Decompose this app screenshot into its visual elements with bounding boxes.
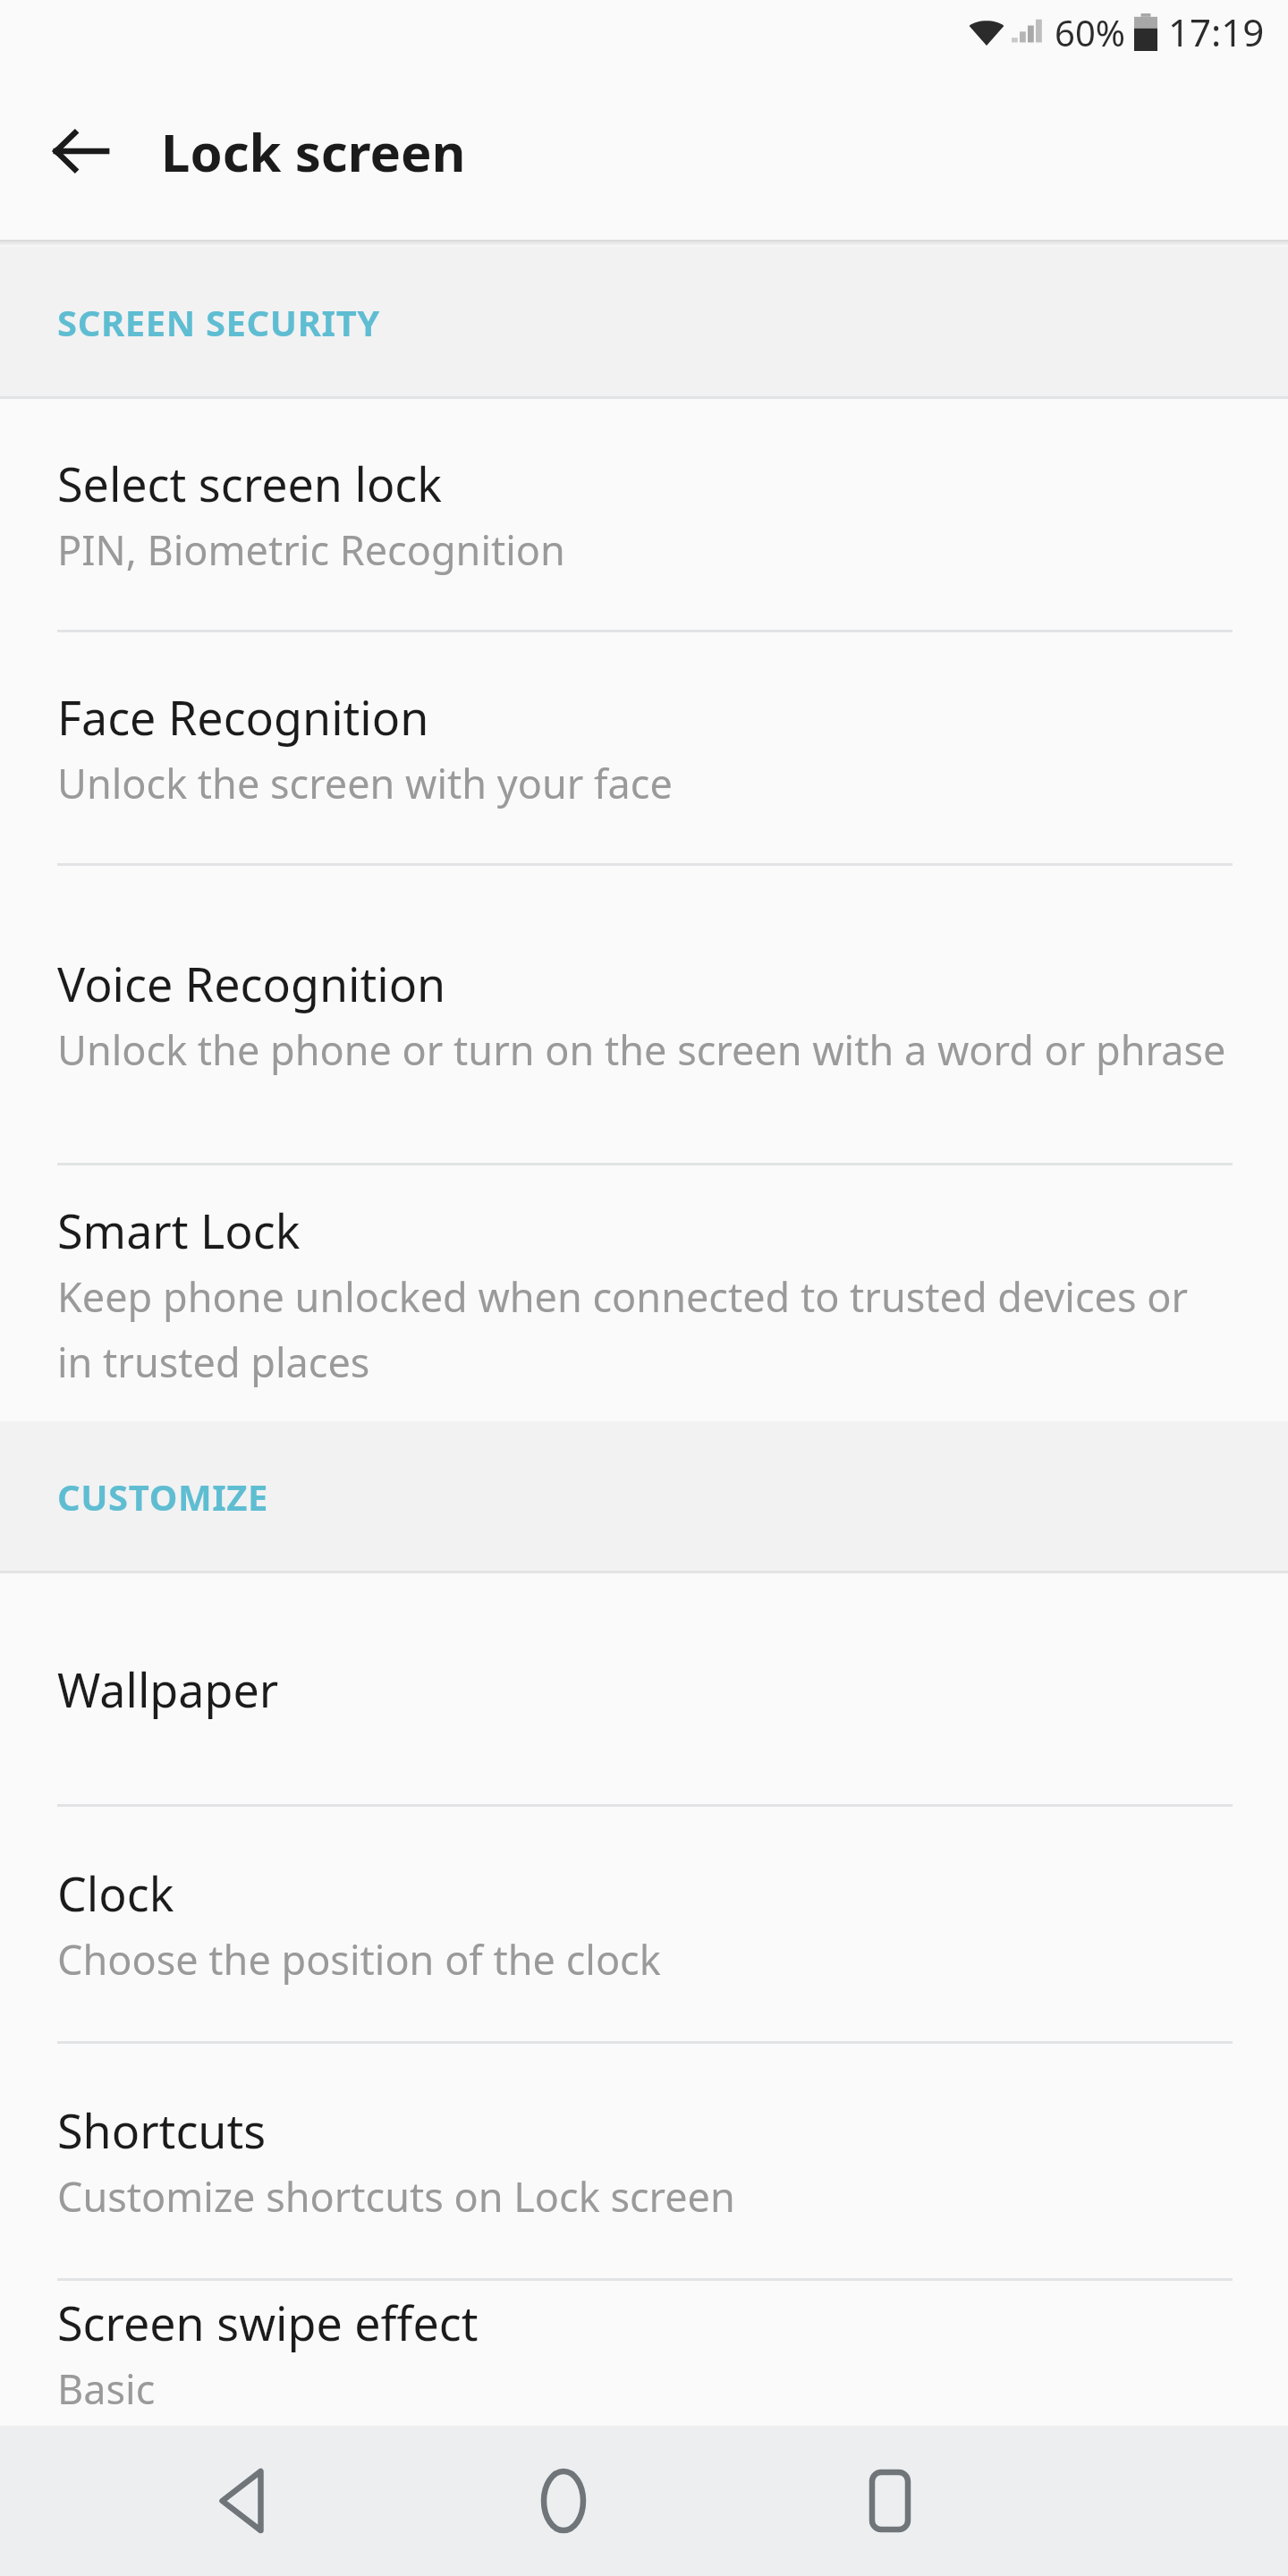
- button[interactable]: Back: [30, 101, 131, 201]
- staticText: CUSTOMIZE: [57, 1472, 269, 1521]
- button[interactable]: Clock: [0, 1807, 1288, 2041]
- staticText: Smart Lock: [57, 1199, 301, 1262]
- button[interactable]: Back: [161, 2426, 322, 2576]
- staticText: 60%: [1055, 8, 1125, 56]
- staticText: Unlock the phone or turn on the screen w…: [57, 1022, 1226, 1077]
- staticText: Clock: [57, 1861, 174, 1925]
- button[interactable]: Shortcuts: [0, 2044, 1288, 2278]
- button[interactable]: Face Recognition: [0, 632, 1288, 863]
- button[interactable]: Voice Recognition: [0, 866, 1288, 1163]
- staticText: Shortcuts: [57, 2098, 267, 2162]
- staticText: Lock screen: [161, 116, 466, 187]
- button[interactable]: Recent apps: [809, 2426, 970, 2576]
- staticText: SCREEN SECURITY: [57, 298, 380, 346]
- staticText: Face Recognition: [57, 685, 429, 749]
- staticText: Unlock the screen with your face: [57, 756, 673, 810]
- staticText: PIN, Biometric Recognition: [57, 522, 565, 577]
- staticText: Voice Recognition: [57, 952, 446, 1015]
- staticText: Basic: [57, 2361, 156, 2416]
- staticText: Customize shortcuts on Lock screen: [57, 2169, 735, 2224]
- staticText: Wallpaper: [57, 1657, 279, 1721]
- button[interactable]: Screen swipe effect: [0, 2281, 1288, 2426]
- button[interactable]: Wallpaper: [0, 1573, 1288, 1804]
- staticText: 17:19: [1168, 6, 1265, 57]
- button[interactable]: Home: [483, 2426, 644, 2576]
- button[interactable]: Select screen lock: [0, 399, 1288, 630]
- staticText: Screen swipe effect: [57, 2291, 479, 2354]
- staticText: Choose the position of the clock: [57, 1932, 661, 1987]
- staticText: Select screen lock: [57, 452, 443, 515]
- staticText: Keep phone unlocked when connected to tr…: [57, 1269, 1233, 1389]
- button[interactable]: Smart Lock: [0, 1165, 1288, 1421]
